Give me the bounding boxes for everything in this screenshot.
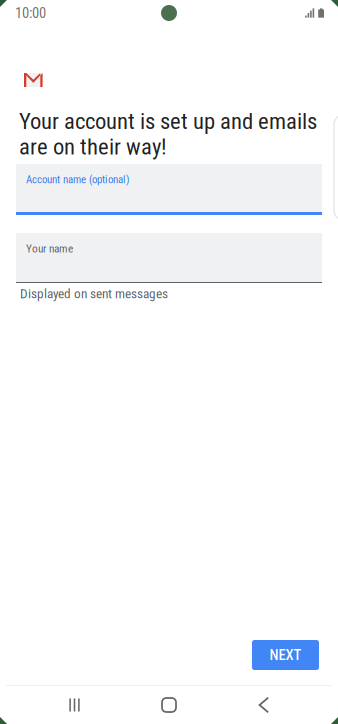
staticText: 10:00	[15, 4, 46, 22]
staticText: Your account is set up and emails are on…	[19, 108, 317, 160]
button[interactable]: Home	[149, 686, 189, 724]
button[interactable]: Recent apps	[0, 686, 149, 724]
staticText: Your name	[26, 242, 73, 255]
staticText: Account name (optional)	[26, 173, 129, 186]
staticText: NEXT	[269, 646, 301, 664]
button[interactable]: NEXT	[252, 640, 319, 670]
button[interactable]: Back	[189, 686, 338, 724]
staticText: Displayed on sent messages	[20, 286, 168, 302]
